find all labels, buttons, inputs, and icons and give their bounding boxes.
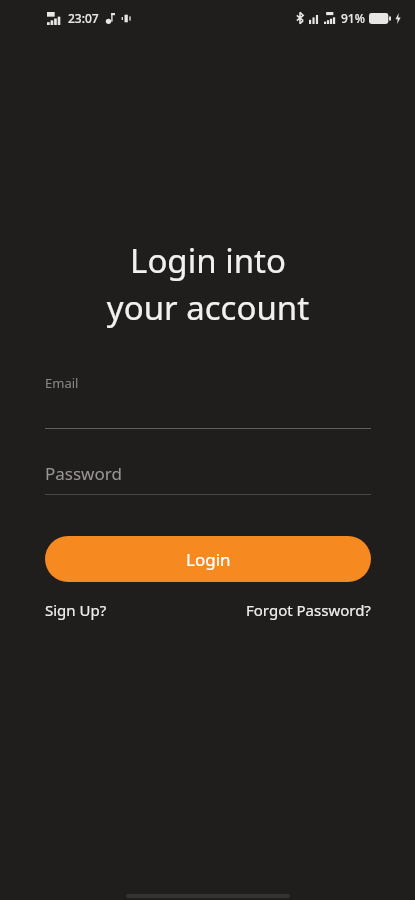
staticText: Login [186, 548, 231, 571]
staticText: 23:07 [68, 10, 99, 26]
staticText: Email [45, 374, 79, 392]
button[interactable]: Login [45, 536, 371, 582]
button[interactable]: Password input field [45, 462, 371, 495]
staticText: Sign Up? [45, 600, 107, 620]
staticText: Password [45, 462, 122, 485]
button[interactable]: Sign Up? [45, 596, 107, 624]
staticText: Forgot Password? [246, 600, 371, 620]
staticText: Login into your account [45, 238, 371, 330]
button[interactable]: Email input field [45, 374, 371, 429]
button[interactable]: Forgot Password? [246, 596, 371, 624]
staticText: 91% [341, 10, 365, 26]
